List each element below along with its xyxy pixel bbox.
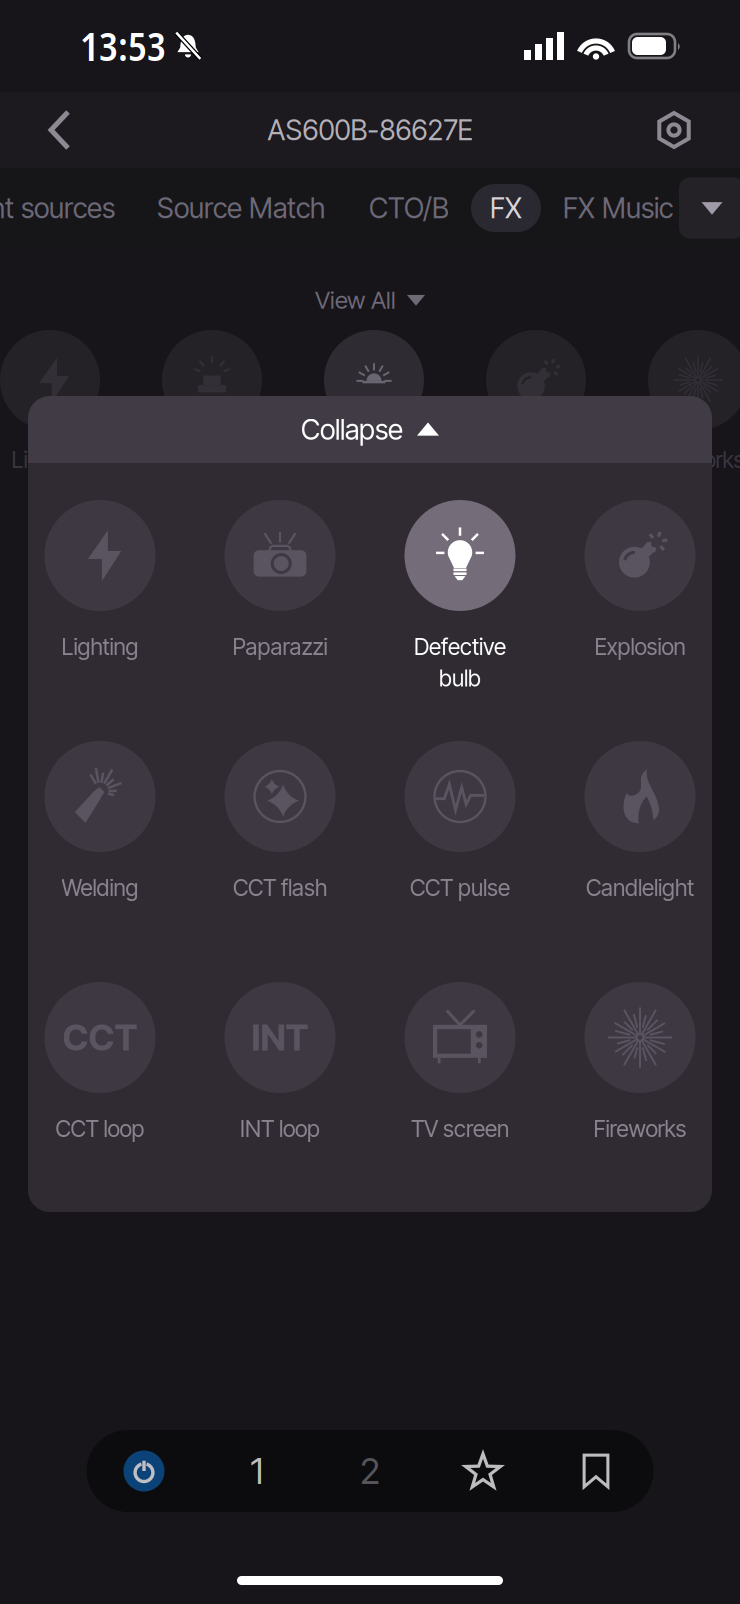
button[interactable]: Power [87,1430,200,1512]
staticText: 2 [360,1449,380,1493]
staticText: Defective [328,446,420,473]
staticText: Fireworks [651,446,740,473]
staticText: Candlelight [586,874,694,901]
staticText: 1 [250,1449,263,1493]
button[interactable]: Favorites [426,1430,539,1512]
staticText: CCT [62,1016,137,1059]
button[interactable]: Lighting [28,500,172,700]
button[interactable]: Source Match [135,168,347,248]
staticText: INT loop [240,1115,320,1142]
staticText: FX Music [563,191,673,225]
staticText: FX [490,191,522,225]
button[interactable]: Welding [28,741,172,941]
staticText: Explosion [490,446,581,473]
button[interactable]: CCT pulse [388,741,532,941]
staticText: AS600B-86627E [267,113,472,147]
staticText: Paparazzi [164,446,259,473]
staticText: Source Match [157,191,325,225]
staticText: Lighting [11,446,88,473]
staticText: Explosion [594,633,685,660]
staticText: CCT loop [55,1115,144,1142]
staticText: Collapse [301,413,403,446]
button[interactable]: INT [208,982,352,1182]
staticText: CTO/B [369,191,449,225]
staticText: Lighting [61,633,138,660]
button[interactable]: Back [24,92,96,168]
button[interactable]: FX Music [541,168,695,248]
button[interactable]: 1 [200,1430,313,1512]
button[interactable]: More tabs [679,177,740,238]
button[interactable]: Explosion [568,500,712,700]
button[interactable]: Bookmarks [539,1430,652,1512]
button[interactable]: Collapse [28,396,712,463]
button[interactable]: CCT [28,982,172,1182]
staticText: INT [251,1016,308,1059]
staticText: Paparazzi [232,633,327,660]
button[interactable]: Defective [388,500,532,700]
button[interactable]: View All [315,272,425,328]
staticText: View All [315,285,396,314]
staticText: CCT pulse [410,874,510,901]
button[interactable]: FX [471,184,541,232]
button[interactable]: Fireworks [568,982,712,1182]
staticText: Fireworks [593,1115,686,1142]
button[interactable]: CCT flash [208,741,352,941]
button[interactable]: Paparazzi [208,500,352,700]
button[interactable]: CTO/B [347,168,471,248]
button[interactable]: Settings [632,92,716,168]
staticText: Welding [61,874,138,901]
staticText: 13:53 [80,20,166,72]
staticText: TV screen [411,1115,509,1142]
staticText: CCT flash [233,874,327,901]
staticText: Defective [414,633,506,660]
staticText: bulb [439,664,481,692]
button[interactable]: Candlelight [568,741,712,941]
staticText: Ambient sources [0,191,115,225]
button[interactable]: Ambient sources [0,168,135,248]
button[interactable]: 2 [313,1430,426,1512]
button[interactable]: TV screen [388,982,532,1182]
